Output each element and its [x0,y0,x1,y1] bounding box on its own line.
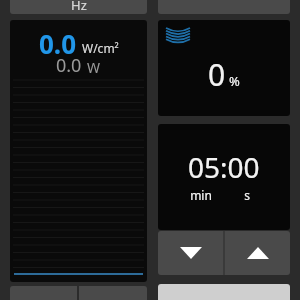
button[interactable]: 05:00 [158,124,290,230]
button[interactable]: 0.0 [10,20,147,282]
staticText: 05:00 [188,148,260,186]
staticText: 0.0 [56,53,82,78]
staticText: s [224,187,270,203]
staticText: min [178,187,224,203]
staticText: 0 [208,54,226,95]
button[interactable]: Start [158,284,290,300]
staticText: W [87,58,101,77]
button[interactable]: Decrease timer [158,231,223,275]
staticText: W/cm² [82,40,119,56]
staticText: % [229,72,240,90]
button[interactable]: Ultrasound mode [158,20,290,116]
button[interactable]: Increase timer [225,231,290,275]
staticText: Hz [71,0,87,14]
other: Ultrasound mode [164,26,192,46]
staticText: 0.0 [39,26,77,61]
button[interactable]: Hz [10,0,147,14]
